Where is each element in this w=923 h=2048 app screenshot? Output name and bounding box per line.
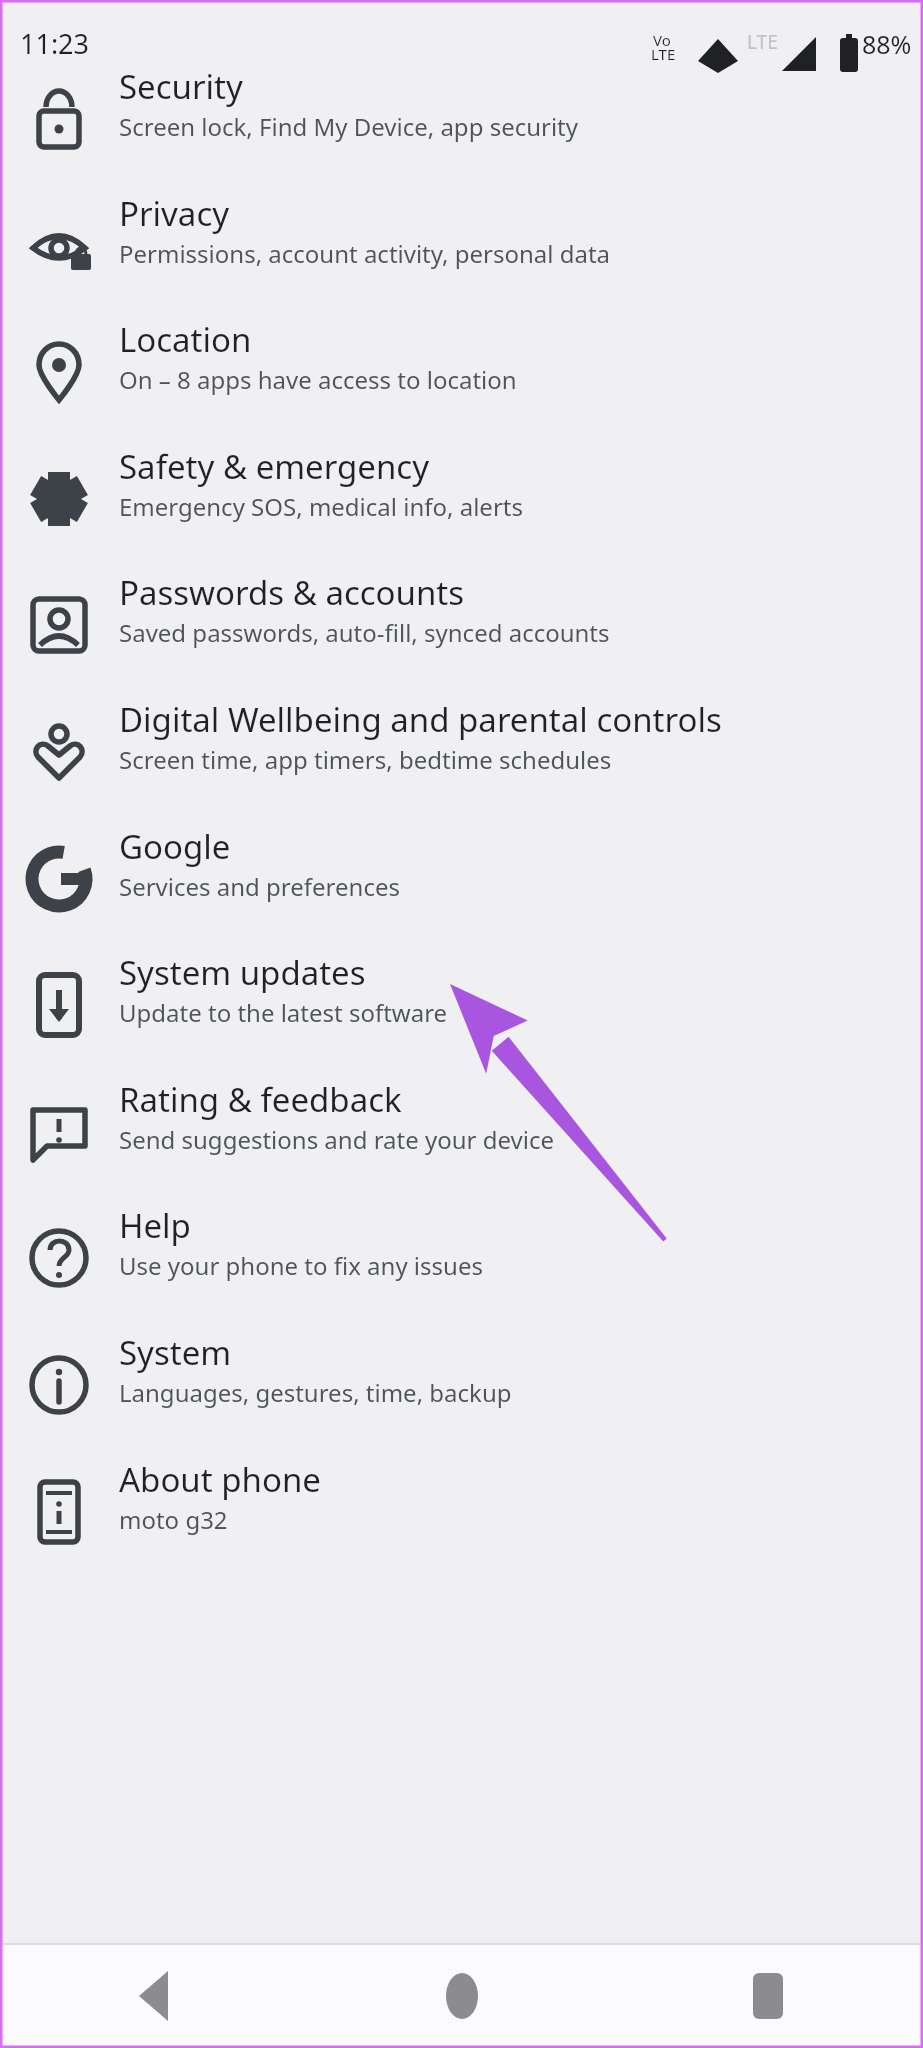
staticText: Vo [653, 30, 671, 50]
staticText: System updates [119, 950, 366, 995]
staticText: 88% [862, 27, 912, 61]
staticText: Passwords & accounts [119, 570, 465, 615]
staticText: Screen lock, Find My Device, app securit… [119, 110, 579, 143]
staticText: Services and preferences [119, 870, 400, 903]
button[interactable]: Google [0, 816, 923, 942]
staticText: Emergency SOS, medical info, alerts [119, 490, 523, 523]
staticText: Send suggestions and rate your device [119, 1123, 554, 1156]
button[interactable]: About phone [0, 1449, 923, 1575]
staticText: moto g32 [119, 1503, 228, 1536]
staticText: Permissions, account activity, personal … [119, 237, 611, 270]
staticText: Location [119, 317, 252, 362]
staticText: About phone [119, 1457, 321, 1502]
button[interactable]: Privacy [0, 183, 923, 309]
button[interactable]: Rating & feedback [0, 1069, 923, 1195]
staticText: Rating & feedback [119, 1077, 402, 1122]
button[interactable]: Passwords & accounts [0, 562, 923, 688]
staticText: Languages, gestures, time, backup [119, 1376, 512, 1409]
staticText: 11:23 [20, 25, 90, 62]
staticText: Digital Wellbeing and parental controls [119, 697, 722, 742]
staticText: Update to the latest software [119, 996, 448, 1029]
button[interactable]: Recent apps [723, 1951, 813, 2041]
staticText: Security [119, 64, 243, 109]
button[interactable]: Digital Wellbeing and parental controls [0, 689, 923, 815]
staticText: LTE [651, 44, 676, 64]
staticText: Use your phone to fix any issues [119, 1249, 483, 1282]
staticText: LTE [747, 29, 778, 55]
staticText: Help [119, 1203, 191, 1248]
button[interactable]: System updates [0, 942, 923, 1068]
staticText: Safety & emergency [119, 444, 430, 489]
button[interactable]: Help [0, 1195, 923, 1321]
staticText: Screen time, app timers, bedtime schedul… [119, 743, 612, 776]
staticText: System [119, 1330, 232, 1375]
staticText: Saved passwords, auto-fill, synced accou… [119, 616, 610, 649]
staticText: Google [119, 824, 231, 869]
staticText: Privacy [119, 191, 230, 236]
button[interactable]: System [0, 1322, 923, 1448]
staticText: On – 8 apps have access to location [119, 363, 517, 396]
button[interactable]: Location [0, 309, 923, 435]
button[interactable]: Back [110, 1951, 200, 2041]
button[interactable]: Home [417, 1951, 507, 2041]
button[interactable]: Security [0, 56, 923, 182]
button[interactable]: Safety & emergency [0, 436, 923, 562]
